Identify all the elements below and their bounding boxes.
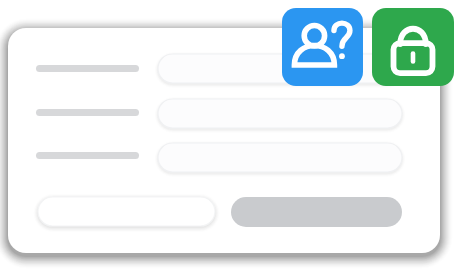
button[interactable]: Secure [372,8,454,86]
button[interactable]: Who has access [282,8,363,86]
